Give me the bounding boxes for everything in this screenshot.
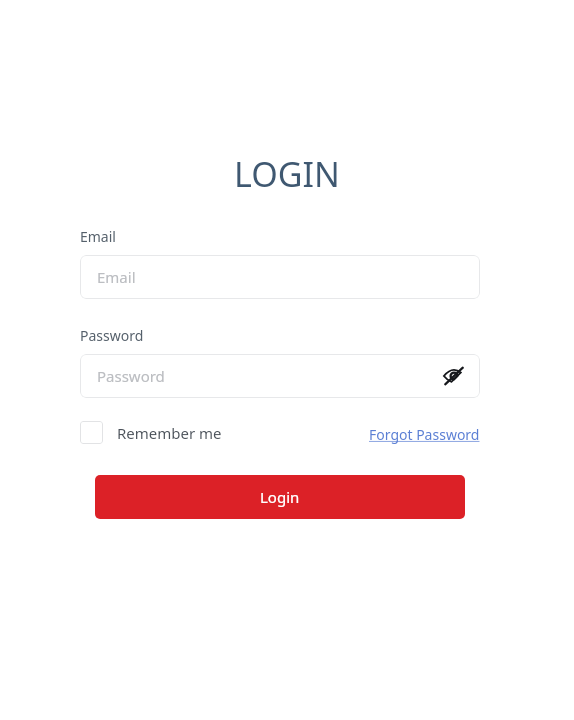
staticText: Login bbox=[260, 487, 300, 507]
button[interactable]: Show password bbox=[438, 360, 470, 392]
staticText: Password bbox=[97, 366, 165, 386]
staticText: Password bbox=[80, 326, 144, 345]
button[interactable]: Forgot Password bbox=[369, 425, 480, 444]
staticText: Forgot Password bbox=[369, 425, 480, 444]
button[interactable]: Login bbox=[95, 475, 465, 519]
button[interactable]: Password bbox=[80, 354, 480, 398]
button[interactable]: Remember me bbox=[80, 421, 222, 444]
staticText: Email bbox=[80, 227, 116, 246]
button[interactable]: Email bbox=[80, 255, 480, 299]
staticText: Remember me bbox=[117, 423, 222, 443]
staticText: LOGIN bbox=[87, 151, 487, 197]
staticText: Email bbox=[97, 267, 136, 287]
